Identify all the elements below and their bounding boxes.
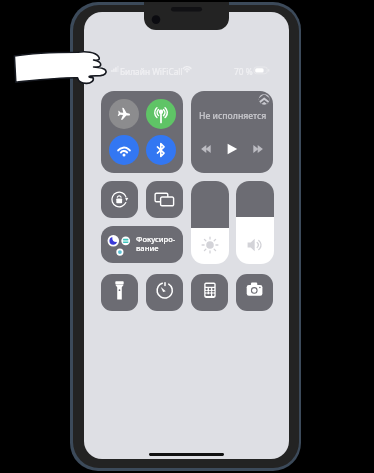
button[interactable]: Cellular data <box>146 99 176 129</box>
button[interactable]: Camera <box>236 274 273 311</box>
button[interactable]: Wi-Fi <box>109 135 139 165</box>
button[interactable]: Screen mirroring <box>146 181 183 218</box>
staticText: Не исполняется <box>199 110 267 122</box>
staticText: 70 % <box>234 66 253 77</box>
button[interactable]: Brightness <box>191 181 229 264</box>
button[interactable]: Timer <box>146 274 183 311</box>
button[interactable]: Volume <box>236 181 274 264</box>
button[interactable]: Airplane mode <box>101 91 183 173</box>
staticText: Фокусиро- вание <box>136 234 176 253</box>
button[interactable]: Calculator <box>191 274 228 311</box>
button[interactable]: Rotation lock <box>101 181 138 218</box>
button[interactable]: Фокусиро- вание <box>101 226 183 263</box>
button[interactable]: Bluetooth <box>146 135 176 165</box>
button[interactable]: Airplane mode <box>109 99 139 129</box>
button[interactable]: Не исполняется <box>191 91 273 173</box>
button[interactable]: Flashlight <box>101 274 138 311</box>
staticText: Билайн WiFiCall <box>120 66 183 77</box>
